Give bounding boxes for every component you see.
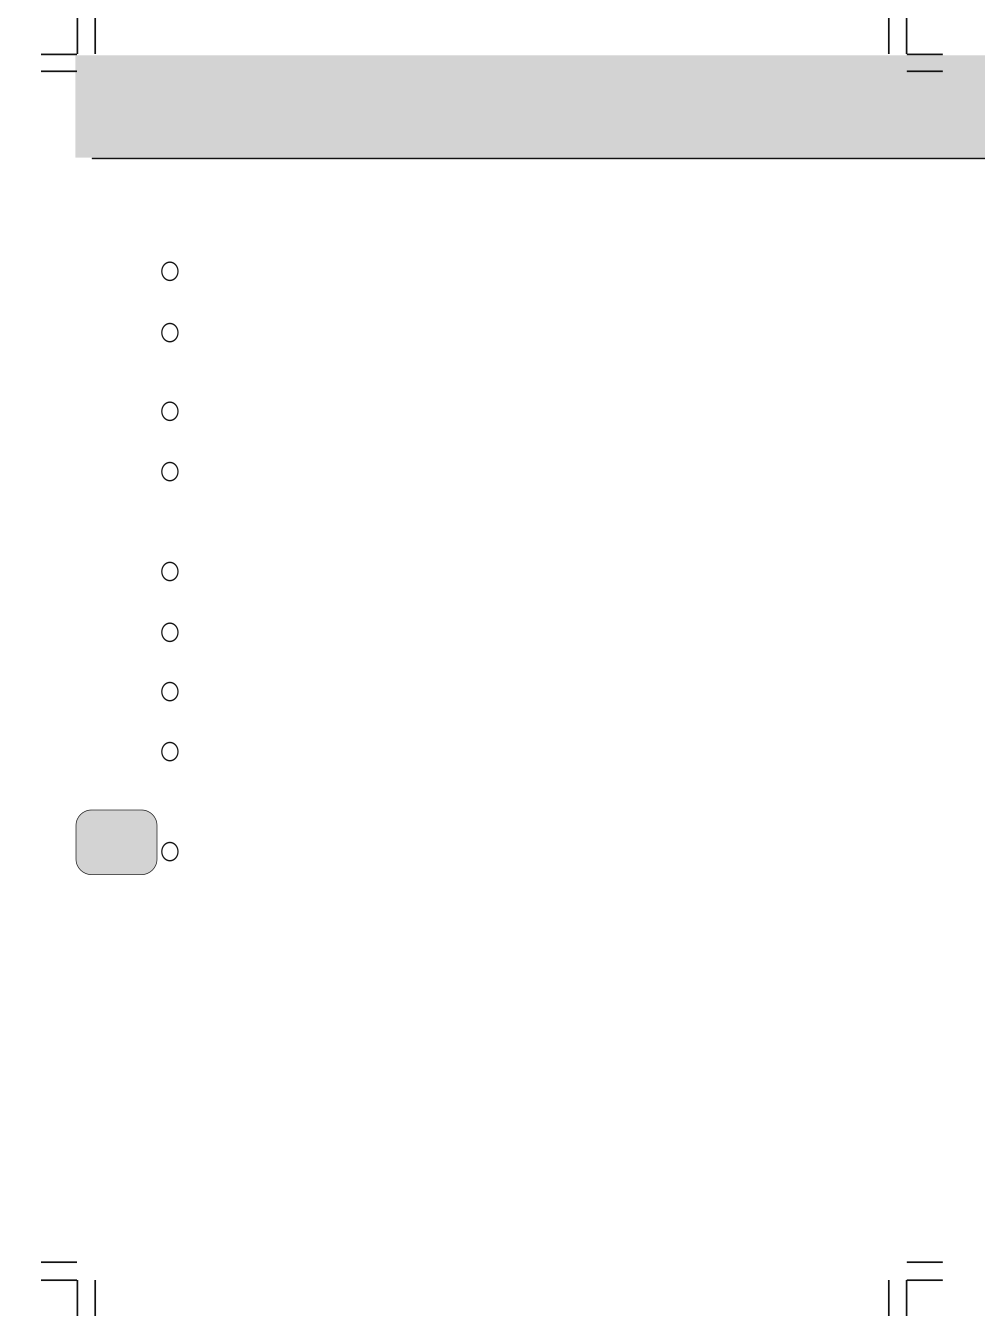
button[interactable]: Battery <box>162 722 985 782</box>
button[interactable]: General <box>162 241 985 301</box>
button[interactable]: Appearance <box>162 303 985 363</box>
button[interactable]: Privacy & Security <box>162 541 985 601</box>
button[interactable]: Face ID & Passcode <box>162 602 985 662</box>
button[interactable]: Screen Time <box>162 662 985 722</box>
button[interactable]: Sounds & Haptics <box>162 442 985 502</box>
button[interactable]: Notifications <box>162 381 985 441</box>
button[interactable]: Account <box>76 814 985 890</box>
